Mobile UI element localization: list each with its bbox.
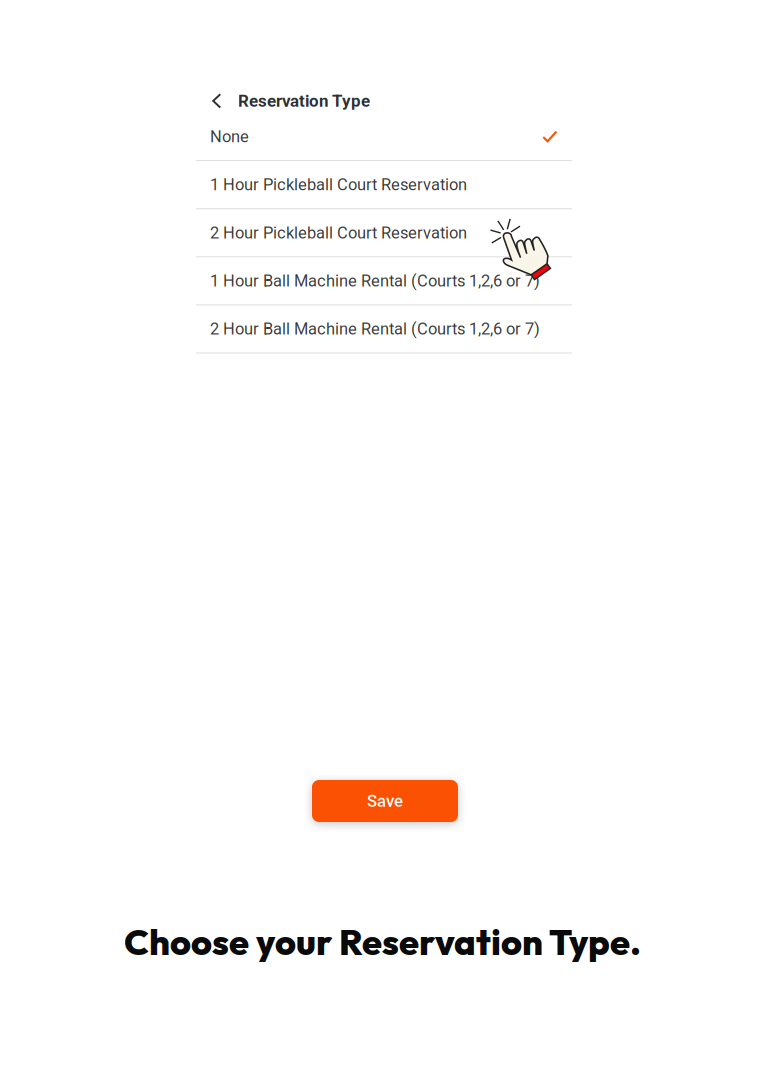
staticText: 1 Hour Pickleball Court Reservation bbox=[210, 175, 467, 194]
staticText: 2 Hour Ball Machine Rental (Courts 1,2,6… bbox=[210, 319, 540, 339]
staticText: Choose your Reservation Type. bbox=[124, 919, 641, 964]
staticText: Save bbox=[367, 791, 403, 811]
button[interactable]: 2 Hour Ball Machine Rental (Courts 1,2,6… bbox=[196, 305, 572, 353]
staticText: None bbox=[210, 127, 249, 146]
staticText: 2 Hour Pickleball Court Reservation bbox=[210, 223, 467, 242]
staticText: 1 Hour Ball Machine Rental (Courts 1,2,6… bbox=[210, 271, 540, 290]
button[interactable]: 2 Hour Pickleball Court Reservation bbox=[196, 209, 572, 257]
staticText: Reservation Type bbox=[238, 91, 370, 111]
button[interactable]: 1 Hour Ball Machine Rental (Courts 1,2,6… bbox=[196, 257, 572, 305]
button[interactable]: 1 Hour Pickleball Court Reservation bbox=[196, 161, 572, 209]
button[interactable]: Save bbox=[312, 780, 458, 822]
button[interactable]: Reservation Type bbox=[196, 88, 572, 114]
button[interactable]: None bbox=[196, 113, 572, 161]
